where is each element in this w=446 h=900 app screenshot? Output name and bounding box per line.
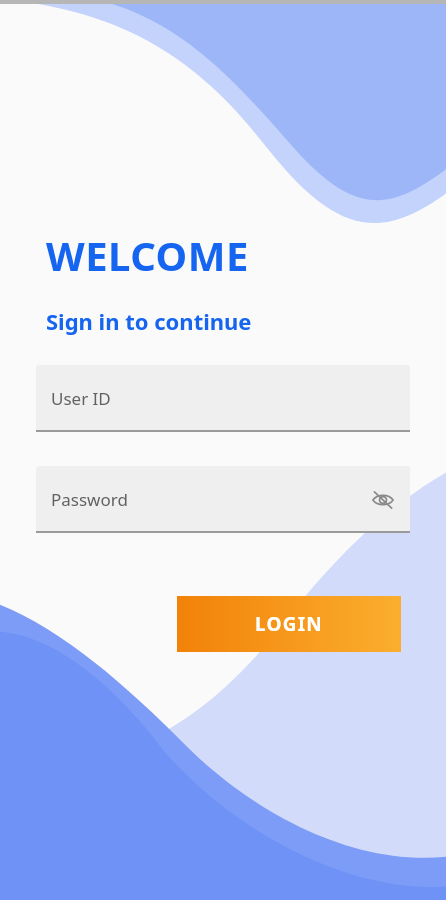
button[interactable]: Password xyxy=(36,466,410,533)
staticText: Password xyxy=(51,488,128,511)
button[interactable]: LOGIN xyxy=(177,596,401,652)
staticText: Sign in to continue xyxy=(46,306,252,336)
button[interactable]: Toggle password visibility xyxy=(366,483,400,517)
button[interactable]: User ID xyxy=(36,365,410,432)
staticText: User ID xyxy=(51,387,111,410)
staticText: WELCOME xyxy=(46,228,249,282)
staticText: LOGIN xyxy=(255,611,323,637)
